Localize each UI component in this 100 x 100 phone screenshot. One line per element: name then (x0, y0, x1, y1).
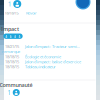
staticText: 18/18/15 (5, 54, 19, 59)
staticText: Tableau indicateur (25, 64, 56, 69)
staticText: Écologie et économie (25, 54, 61, 59)
button[interactable]: remarque (2, 49, 20, 54)
button[interactable]: 18/21/15 (5, 44, 95, 49)
staticText: 4 (5, 33, 7, 39)
button[interactable]: 18/18/15 (5, 59, 95, 64)
staticText: Jalon d'impact : balise d'exercice (25, 59, 81, 64)
button[interactable]: Contributeur (8, 0, 21, 8)
button[interactable]: Membre de la communauté (7, 88, 20, 97)
staticText: 1 (7, 88, 11, 97)
button[interactable]: 18/18/15 (5, 64, 95, 69)
staticText: 1 (8, 0, 12, 8)
staticText: Impact (1, 25, 19, 33)
staticText: 18/18/15 (5, 64, 19, 69)
staticText: Communauté (0, 81, 32, 89)
staticText: Revoir (26, 10, 37, 16)
button[interactable]: Revoir (26, 10, 37, 16)
staticText: remarque (2, 49, 20, 54)
button[interactable]: 18/18/15 (5, 54, 95, 59)
staticText: 18/21/15 (5, 44, 19, 49)
staticText: 18/18/15 (5, 59, 19, 64)
staticText: 18/18/15 (4, 10, 18, 16)
staticText: Jalon d'impact : Tracteur semi... (25, 44, 80, 49)
